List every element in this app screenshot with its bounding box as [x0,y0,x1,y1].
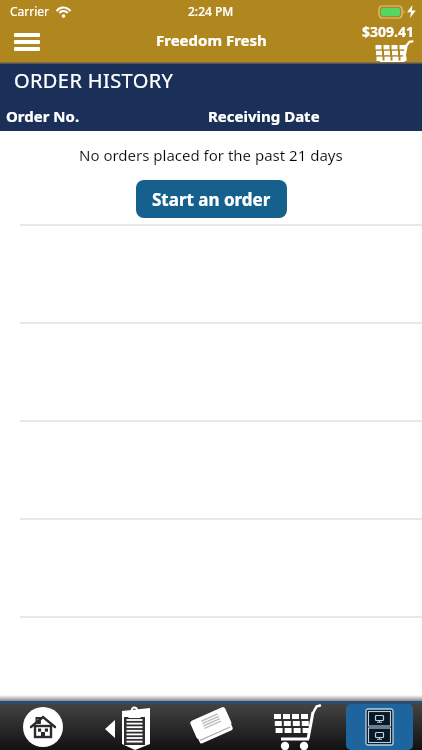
staticText: No orders placed for the past 21 days [79,145,343,165]
staticText: $309.41 [362,22,414,41]
staticText: Carrier [10,3,50,19]
button[interactable] [0,704,85,750]
button[interactable]: Start an order [136,180,287,218]
staticText: 2:24 PM [188,3,234,19]
button[interactable]: $309.41 [362,22,414,62]
staticText: Freedom Fresh [156,30,267,50]
staticText: ORDER HISTORY [14,67,174,94]
button[interactable] [346,704,413,750]
button[interactable] [14,33,40,51]
button[interactable] [85,704,170,750]
staticText: Receiving Date [208,106,320,126]
staticText: Start an order [152,188,271,211]
button[interactable] [170,704,254,750]
staticText: Order No. [6,106,80,126]
button[interactable] [254,704,338,750]
